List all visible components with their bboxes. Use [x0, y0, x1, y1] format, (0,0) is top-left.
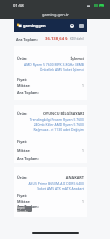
staticText: ASUS Prime B650M-A II DDR5 6400 Soket AM… — [17, 181, 84, 191]
staticText: gaming.gen.tr — [42, 12, 69, 17]
staticText: Ara Toplam: — [17, 90, 39, 95]
staticText: ANAKART — [31, 175, 84, 180]
staticText: Miktar: — [17, 148, 31, 153]
staticText: AMD Ryzen 5 7600 MPK 3.8GHz 38MB Önbelle… — [17, 62, 84, 72]
staticText: İşlemci — [31, 56, 84, 61]
button[interactable]: gaminggen home — [16, 22, 47, 29]
staticText: 80 — [100, 4, 103, 7]
staticText: Ürün: — [17, 175, 28, 180]
staticText: Ürün: — [17, 111, 28, 116]
staticText: Fiyat: — [17, 139, 28, 144]
staticText: Ara Toplam: — [17, 204, 39, 209]
staticText: 1 — [82, 148, 84, 153]
staticText: Fiyat: — [17, 77, 28, 82]
button[interactable]: Ürün: — [14, 167, 87, 214]
staticText: 1 — [82, 83, 84, 88]
button[interactable]: Ürün: — [14, 105, 87, 161]
staticText: Ara Toplam: — [17, 156, 39, 161]
staticText: Miktar: — [17, 199, 31, 204]
staticText: Trendingbilgi Frozen Ryzen 5 7600 240mb … — [17, 117, 84, 132]
button[interactable]: Ürün: — [14, 46, 87, 95]
button[interactable]: Account — [68, 22, 75, 29]
staticText: 36.138,64 ₺ — [45, 36, 68, 42]
staticText: Sepeti Güncelle — [17, 206, 32, 212]
staticText: 80 — [94, 3, 98, 8]
staticText: gaminggen — [23, 23, 46, 28]
staticText: 1 — [82, 199, 84, 204]
staticText: Ürün: — [17, 56, 28, 61]
staticText: Fiyat: — [17, 193, 28, 198]
button[interactable]: Sepeti Güncelle — [17, 206, 32, 212]
staticText: KDV dahil — [70, 37, 84, 41]
staticText: OYUNCU BİLGİSAYARI — [31, 111, 84, 116]
staticText: 01:58 — [13, 3, 24, 9]
staticText: Miktar: — [17, 83, 31, 88]
button[interactable]: Menu — [78, 22, 85, 29]
staticText: Ara Toplam: — [16, 37, 38, 42]
